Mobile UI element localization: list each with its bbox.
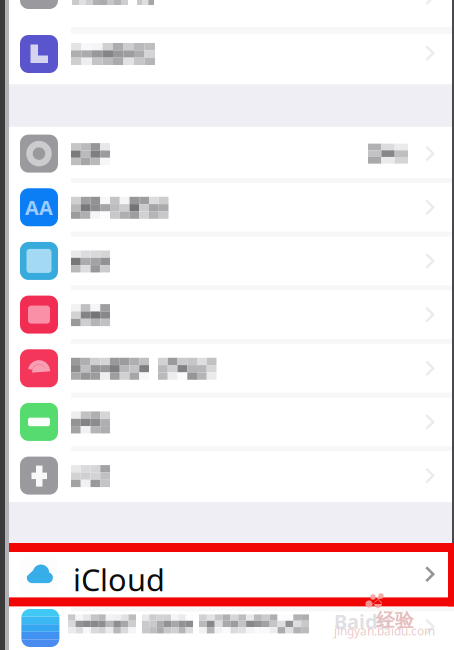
- staticText: 经验: [376, 609, 414, 632]
- button[interactable]: [0, 288, 454, 341]
- button[interactable]: [0, 234, 454, 288]
- button[interactable]: [0, 395, 454, 449]
- button[interactable]: [0, 127, 454, 180]
- staticText: jingyan.baidu.com: [334, 623, 435, 639]
- staticText: iCloud: [73, 559, 165, 600]
- button[interactable]: [0, 606, 454, 650]
- staticText: AA: [25, 194, 53, 221]
- button[interactable]: [0, 449, 454, 502]
- button[interactable]: AA: [0, 180, 454, 234]
- button[interactable]: [0, 0, 454, 26]
- staticText: Baidu: [334, 608, 391, 635]
- button[interactable]: [0, 341, 454, 395]
- button[interactable]: [0, 27, 454, 84]
- button[interactable]: iCloud: [0, 543, 454, 606]
